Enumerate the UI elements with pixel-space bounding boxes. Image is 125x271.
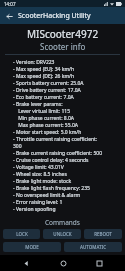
staticText: - Cruise control delay: 4 seconds (13, 157, 89, 164)
staticText: - Max speed (EU): 34 km/h (13, 66, 75, 73)
staticText: - Voltage limit: 43.01V (13, 164, 64, 171)
button[interactable]: MODE (3, 242, 61, 252)
staticText: Lever virtual limit: 115 (13, 108, 71, 115)
staticText: 14:07 (4, 1, 16, 7)
staticText: - Throttle current raising coefficient: (13, 136, 98, 143)
button[interactable]: LOCK (3, 229, 40, 239)
staticText: ScooterHacking Utility (18, 11, 91, 21)
staticText: - Drive battery current: 17.0A (13, 87, 81, 94)
staticText: MIScooter4972 (27, 27, 99, 40)
button[interactable]: AUTOMATIC (64, 242, 122, 252)
button[interactable]: UNLOCK (43, 229, 81, 239)
staticText: - Max speed (DE): 26 km/h (13, 73, 75, 80)
staticText: - Brake light flash frequency: 235 (13, 185, 90, 192)
staticText: - Brake lever params: (13, 101, 63, 108)
button[interactable]: Back (16, 255, 36, 271)
staticText: - Error raising level: 1 (13, 199, 63, 206)
staticText: - Version spoofing (13, 206, 56, 213)
button[interactable]: Recents (89, 255, 109, 271)
staticText: - Brake current raising coefficient: 500 (13, 150, 103, 157)
button[interactable]: REBOOT (84, 229, 122, 239)
staticText: Scooter info (40, 41, 86, 52)
staticText: - Eco battery current: 7.0A (13, 94, 74, 101)
staticText: MODE (25, 244, 39, 250)
button[interactable]: Home (53, 255, 73, 271)
staticText: - Version: DRV223 (13, 59, 55, 66)
staticText: - Wheel size: 8.5 inches (13, 171, 67, 178)
staticText: REBOOT (94, 231, 112, 237)
staticText: - Motor start speed: 5.0 km/h (13, 129, 82, 136)
staticText: 300 (13, 143, 22, 150)
staticText: Max phase current: 55.0A (13, 122, 78, 129)
staticText: Min phase current: 8.0A (13, 115, 75, 122)
staticText: LOCK (16, 231, 28, 237)
button[interactable]: Back (3, 10, 15, 22)
staticText: - Brake light mode: stock (13, 178, 72, 185)
staticText: Commands (45, 218, 80, 227)
staticText: - No overspeed limit & alarm (13, 192, 81, 199)
staticText: - Sports battery current: 25.0A (13, 80, 84, 87)
staticText: AUTOMATIC (80, 244, 106, 250)
staticText: UNLOCK (53, 231, 72, 237)
